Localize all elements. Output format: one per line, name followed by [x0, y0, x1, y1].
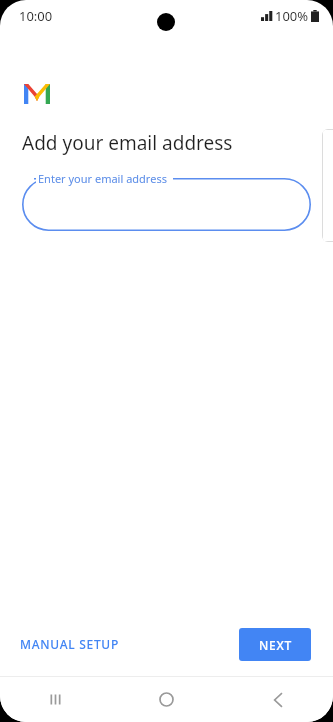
staticText: MANUAL SETUP: [20, 636, 119, 652]
staticText: 100%: [275, 7, 309, 25]
button[interactable]: Recent apps: [0, 677, 111, 722]
staticText: Enter your email address: [38, 171, 167, 186]
button[interactable]: Back: [222, 677, 333, 722]
staticText: 10:00: [19, 7, 53, 25]
staticText: Add your email address: [22, 130, 233, 156]
staticText: NEXT: [259, 637, 292, 653]
button[interactable]: Enter your email address: [22, 178, 311, 231]
button[interactable]: Home: [111, 677, 222, 722]
button[interactable]: NEXT: [239, 628, 311, 661]
button[interactable]: MANUAL SETUP: [10, 627, 129, 661]
